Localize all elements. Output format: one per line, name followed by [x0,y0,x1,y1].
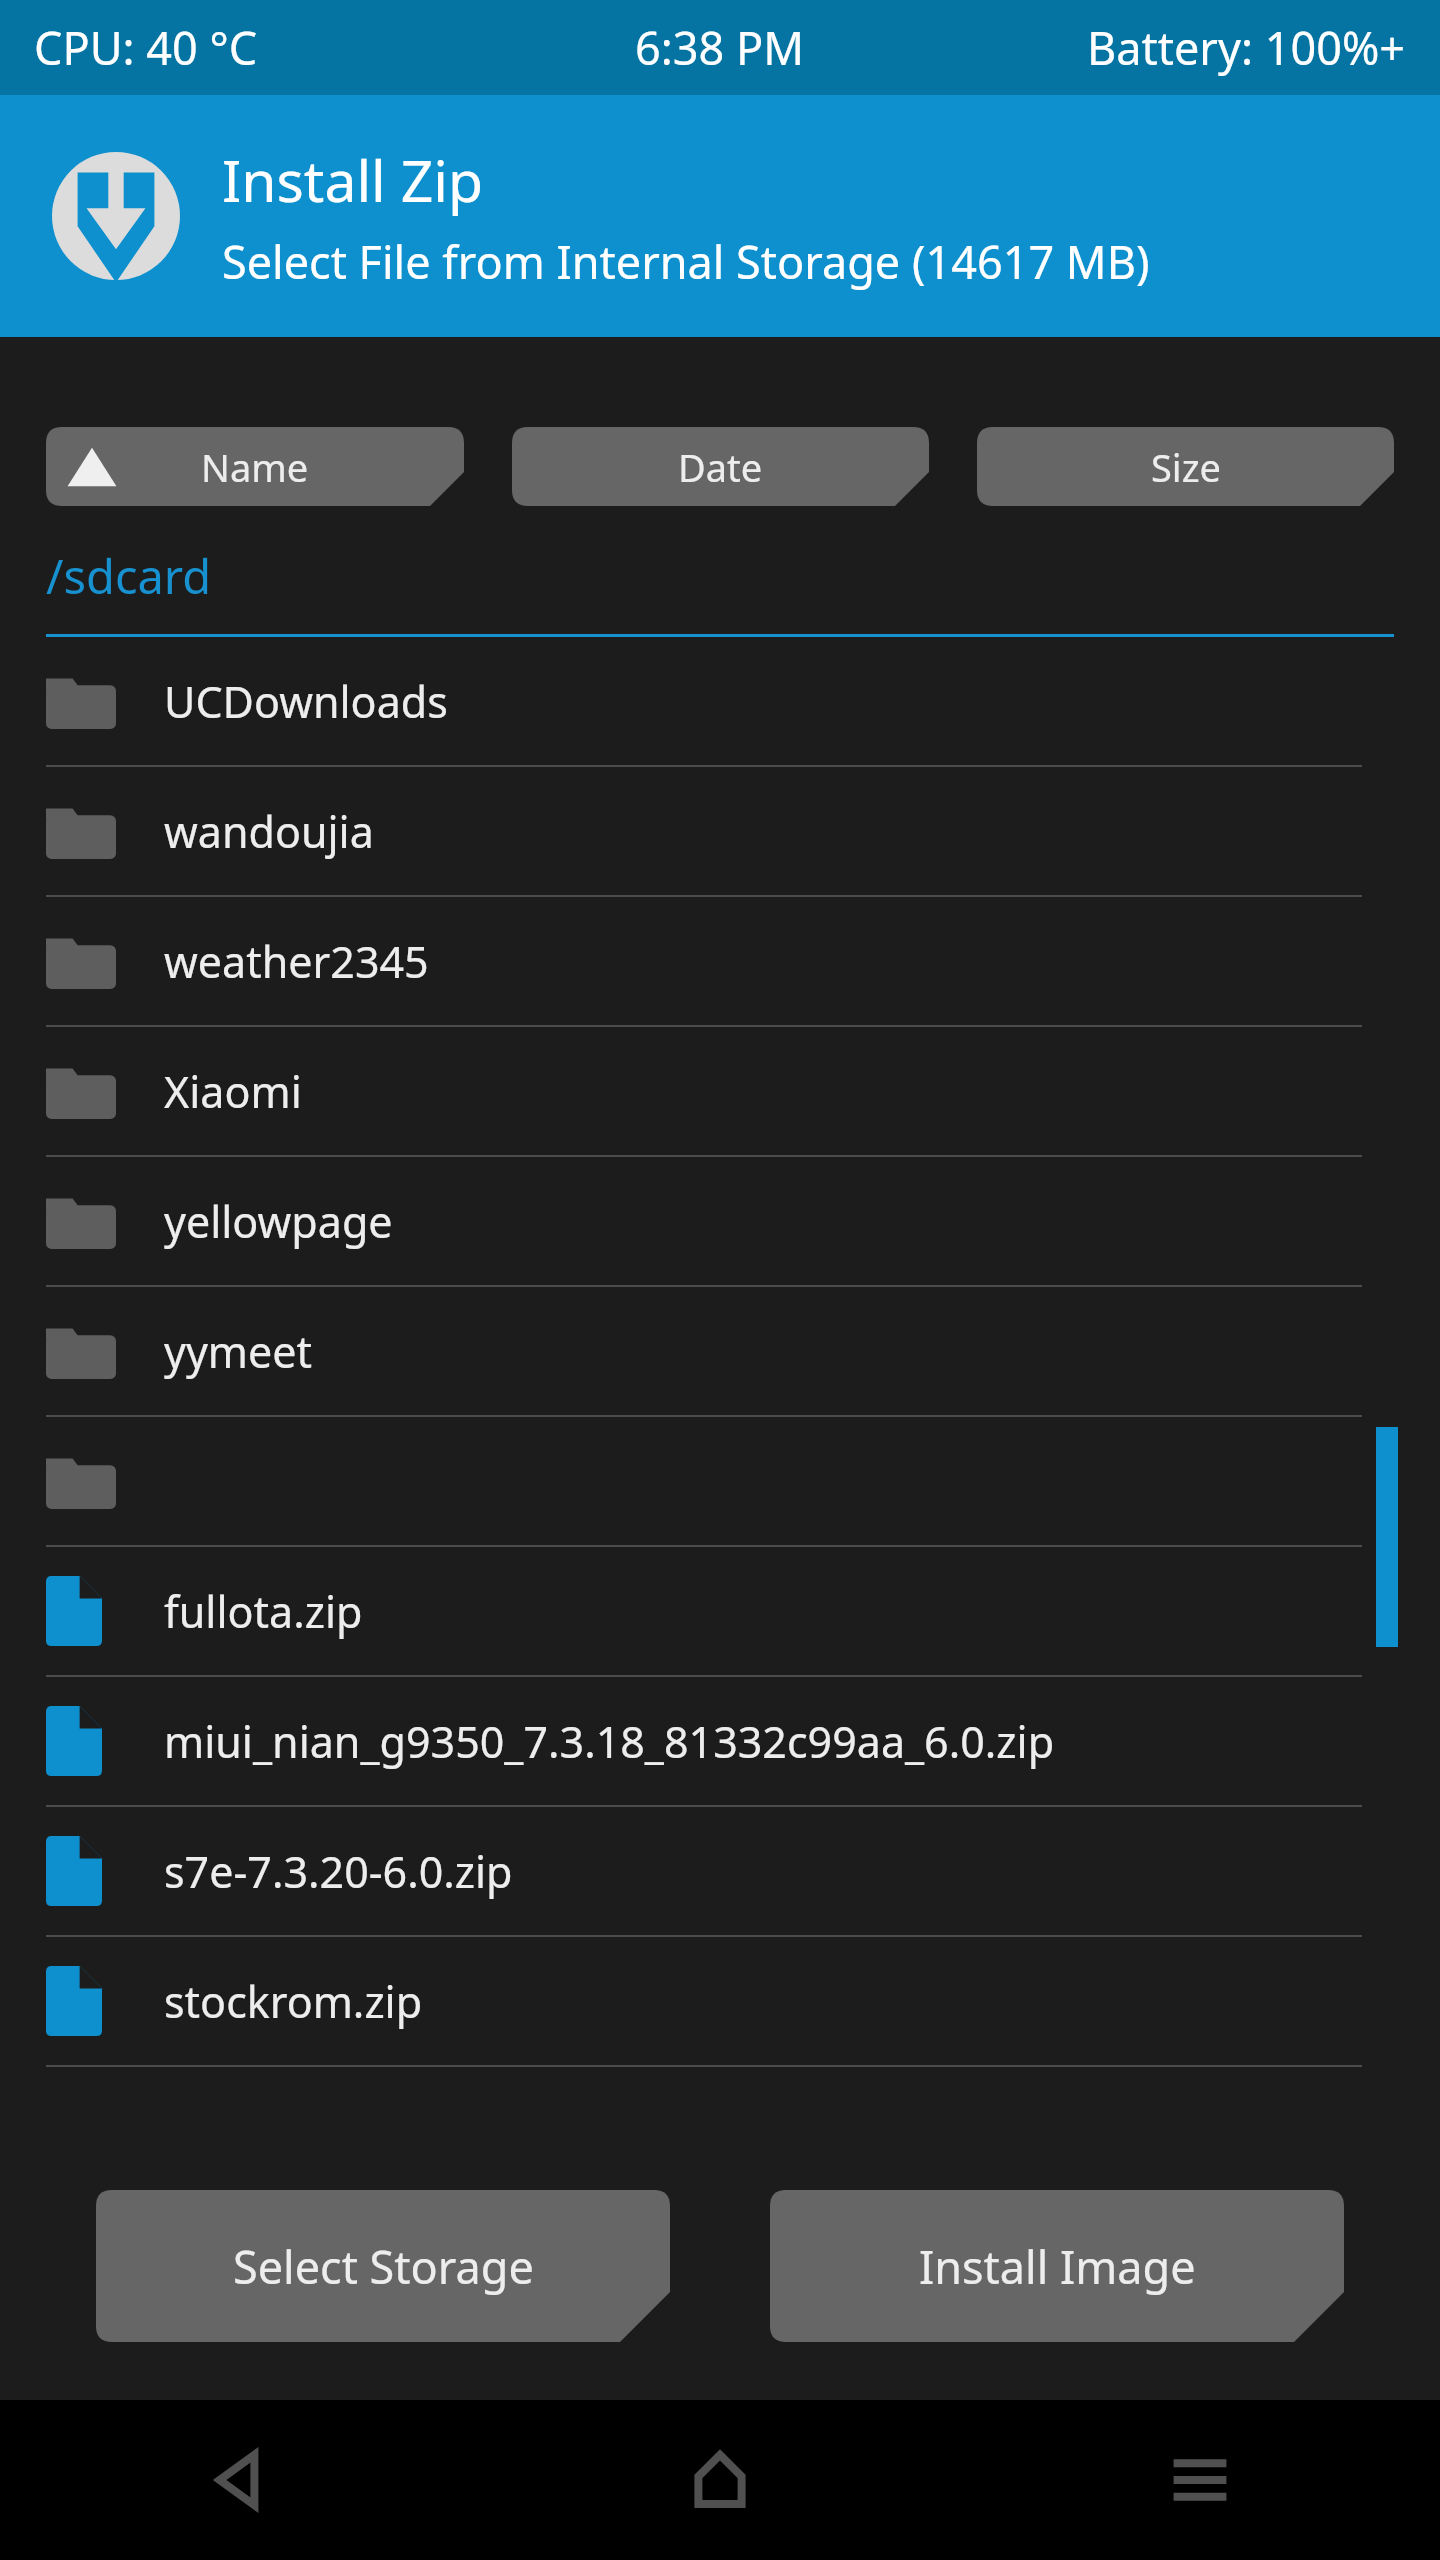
staticText: Battery: 100%+ [1087,17,1406,78]
staticText: Select Storage [233,2236,534,2297]
staticText: Date [678,441,763,493]
staticText: Name [201,441,309,493]
staticText: yellowpage [164,1192,393,1251]
button[interactable]: weather2345 [0,897,1440,1025]
button[interactable]: Recent apps [960,2400,1440,2560]
button[interactable]: Name [46,427,464,506]
staticText: CPU: 40 °C [34,17,258,78]
button[interactable]: yymeet [0,1287,1440,1415]
button[interactable]: Xiaomi [0,1027,1440,1155]
button[interactable]: stockrom.zip [0,1937,1440,2065]
button[interactable]: miui_nian_g9350_7.3.18_81332c99aa_6.0.zi… [0,1677,1440,1805]
staticText: stockrom.zip [164,1972,423,2031]
button[interactable] [0,1417,1440,1545]
button[interactable]: Date [512,427,929,506]
staticText: yymeet [164,1322,313,1381]
staticText: Size [1151,441,1221,493]
button[interactable]: UCDownloads [0,637,1440,765]
button[interactable]: Home [480,2400,960,2560]
staticText: Select File from Internal Storage (14617… [222,231,1150,292]
button[interactable]: Select Storage [96,2190,670,2342]
staticText: fullota.zip [164,1582,363,1641]
button[interactable]: s7e-7.3.20-6.0.zip [0,1807,1440,1935]
button[interactable]: Back [0,2400,480,2560]
staticText: 6:38 PM [635,17,805,78]
button[interactable]: fullota.zip [0,1547,1440,1675]
button[interactable]: wandoujia [0,767,1440,895]
staticText: s7e-7.3.20-6.0.zip [164,1842,513,1901]
staticText: weather2345 [164,932,429,991]
staticText: Xiaomi [164,1062,302,1121]
staticText: UCDownloads [164,672,448,731]
staticText: Install Zip [222,141,484,219]
button[interactable]: Install Image [770,2190,1344,2342]
staticText: Install Image [919,2236,1196,2297]
button[interactable]: yellowpage [0,1157,1440,1285]
button[interactable]: Size [977,427,1394,506]
staticText: wandoujia [164,802,374,861]
staticText: /sdcard [46,544,212,608]
staticText: miui_nian_g9350_7.3.18_81332c99aa_6.0.zi… [164,1712,1055,1771]
